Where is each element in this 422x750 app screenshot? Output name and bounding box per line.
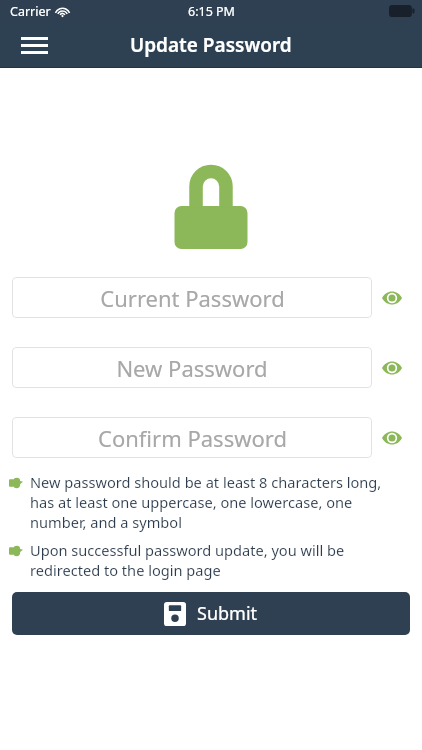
staticText: Upon successful password update, you wil… [30, 540, 408, 580]
button[interactable]: Show password [372, 277, 412, 318]
button[interactable]: Current Password [12, 277, 372, 318]
button[interactable]: Confirm Password [12, 417, 372, 458]
staticText: Submit [197, 601, 258, 626]
button[interactable]: Submit [12, 592, 410, 635]
button[interactable]: Open navigation menu [12, 25, 56, 65]
button[interactable]: New Password [12, 347, 372, 388]
staticText: Current Password [100, 283, 285, 313]
staticText: Update Password [130, 32, 292, 58]
staticText: Carrier [10, 3, 51, 20]
button[interactable]: Show password [372, 347, 412, 388]
staticText: New password should be at least 8 charac… [30, 472, 408, 532]
staticText: 6:15 PM [188, 3, 235, 20]
staticText: Confirm Password [98, 423, 287, 453]
staticText: New Password [116, 353, 268, 383]
button[interactable]: Show password [372, 417, 412, 458]
